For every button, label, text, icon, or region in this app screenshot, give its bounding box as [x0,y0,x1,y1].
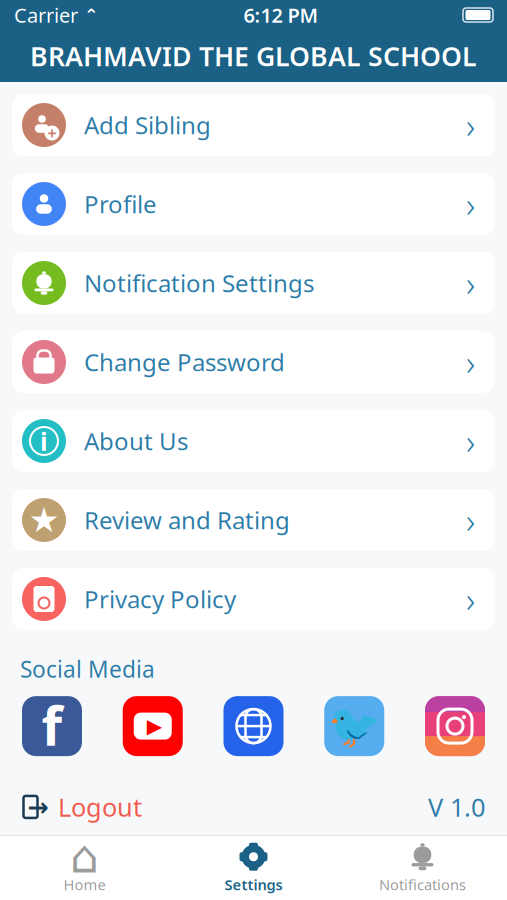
button[interactable]: Change Password [12,331,495,393]
staticText: + [47,122,56,144]
staticText: Carrier [14,2,78,28]
staticText: › [466,497,475,543]
staticText: › [466,260,475,306]
staticText: f [41,690,62,760]
button[interactable]: Facebook [22,696,82,756]
staticText: › [466,181,475,227]
button[interactable]: i [12,410,495,472]
staticText: ★ [28,500,59,540]
staticText: V 1.0 [428,790,485,824]
staticText: Profile [84,188,157,220]
button[interactable]: Website [223,696,283,756]
button[interactable]: Profile [12,173,495,235]
staticText: › [466,418,475,464]
staticText: About Us [84,425,188,457]
staticText: Notification Settings [84,267,314,299]
button[interactable]: Settings [169,836,338,900]
staticText: 🐦 [328,702,381,750]
button[interactable]: ★ [12,489,495,551]
staticText: › [466,339,475,385]
staticText: Settings [224,875,282,894]
button[interactable]: Twitter [324,696,384,756]
staticText: Privacy Policy [84,583,236,615]
button[interactable]: Instagram [425,696,485,756]
staticText: Logout [58,790,142,824]
staticText: › [466,102,475,148]
staticText: › [466,576,475,622]
staticText: ⌃ [78,5,99,25]
button[interactable]: → [22,790,142,824]
staticText: Add Sibling [84,109,211,141]
staticText: BRAHMAVID THE GLOBAL SCHOOL [30,38,477,74]
staticText: Change Password [84,346,285,378]
staticText: Social Media [20,654,155,684]
button[interactable]: ⌂ [0,836,169,900]
staticText: Home [63,875,105,894]
button[interactable]: YouTube [123,696,183,756]
staticText: 6:12 PM [243,2,318,28]
button[interactable]: Privacy Policy [12,568,495,630]
staticText: Notifications [379,875,466,894]
button[interactable]: Notification Settings [12,252,495,314]
staticText: ▶ [147,715,162,737]
staticText: ⌂ [70,831,99,882]
button[interactable]: Notifications [338,836,507,900]
staticText: Review and Rating [84,504,290,536]
staticText: i [40,424,48,458]
staticText: → [27,792,48,821]
button[interactable]: + [12,94,495,156]
